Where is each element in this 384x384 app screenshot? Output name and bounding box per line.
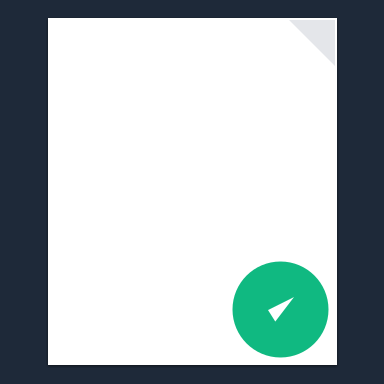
button[interactable]: Send [232,261,328,357]
